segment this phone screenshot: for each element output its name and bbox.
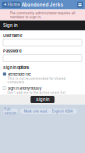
button[interactable]: Sign in anonymously <box>3 84 82 94</box>
button[interactable]: Full version <box>3 108 18 114</box>
staticText: This is not recommended for shared compu… <box>7 77 65 84</box>
staticText: The community administrator requires all… <box>9 11 75 19</box>
staticText: ◀ <box>4 3 7 6</box>
staticText: Remember me <box>7 72 30 77</box>
staticText: Sign in options <box>3 65 29 70</box>
staticText: Sign in <box>36 97 49 102</box>
button[interactable]: Mark site read · English (USA) <box>20 108 77 114</box>
staticText: Password <box>3 48 21 53</box>
staticText: Sign in <box>3 23 18 28</box>
staticText: Mark site read · English (USA) <box>24 109 73 113</box>
button[interactable]: Remember me <box>3 70 82 84</box>
staticText: Abandoned Jerks <box>21 2 63 8</box>
button[interactable]: Menu <box>77 2 83 8</box>
staticText: Username <box>3 33 22 38</box>
staticText: Sign in anonymously <box>7 86 41 91</box>
staticText: Home <box>7 2 19 7</box>
staticText: Don't add me to the active users list <box>7 91 65 94</box>
button[interactable]: ◀ <box>2 2 21 8</box>
staticText: Full version <box>4 108 16 115</box>
button[interactable]: Sign in <box>30 96 54 103</box>
